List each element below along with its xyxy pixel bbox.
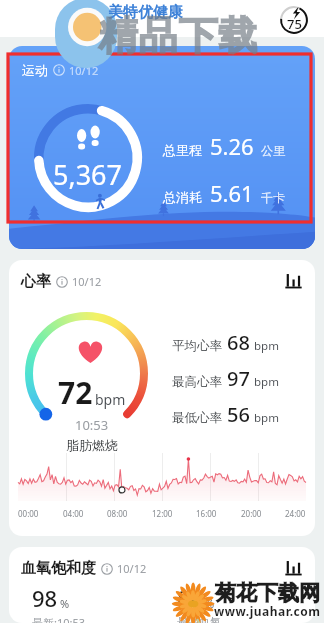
staticText: 千卡 (261, 190, 285, 205)
staticText: bpm (254, 338, 279, 354)
staticText: 美特优健康 (108, 3, 183, 22)
staticText: 精品下载 (98, 11, 258, 60)
staticText: 最高血氧 (177, 615, 221, 623)
staticText: 88 (177, 583, 203, 613)
staticText: 20:00 (241, 508, 262, 519)
staticText: 最新:10:53 (32, 615, 86, 623)
staticText: 00:00 (18, 508, 39, 519)
staticText: bpm (95, 390, 126, 409)
staticText: 10:53 (75, 416, 109, 434)
button[interactable]: 血氧饱和度 (9, 547, 315, 623)
staticText: 75 (287, 15, 302, 33)
staticText: 5,367 (53, 156, 123, 193)
staticText: 16:00 (196, 508, 217, 519)
staticText: 08:00 (107, 508, 128, 519)
staticText: www.juahar.com (214, 603, 321, 619)
staticText: 心率 (21, 272, 51, 291)
staticText: 56 (227, 401, 250, 428)
staticText: 总里程 (163, 142, 202, 158)
staticText: 公里 (261, 143, 285, 158)
staticText: 12:00 (152, 508, 173, 519)
button[interactable]: 运动 (9, 46, 315, 249)
staticText: bpm (254, 410, 279, 426)
staticText: 脂肪燃烧 (66, 437, 118, 453)
staticText: 68 (227, 329, 250, 356)
staticText: 10/12 (69, 63, 99, 78)
button[interactable]: Battery 75 percent charging (280, 6, 308, 34)
button[interactable]: History chart (285, 272, 302, 289)
staticText: 总消耗 (163, 189, 202, 205)
staticText: 平均心率 (172, 338, 222, 354)
staticText: 最低心率 (172, 410, 222, 426)
staticText: 98 (32, 583, 58, 613)
staticText: 5.26 (210, 131, 254, 161)
staticText: % (205, 596, 215, 611)
staticText: 运动 (22, 62, 48, 78)
staticText: 5.61 (210, 178, 254, 208)
staticText: 24:00 (285, 508, 306, 519)
staticText: 97 (227, 365, 250, 392)
staticText: 10/12 (117, 561, 147, 576)
staticText: % (60, 596, 70, 611)
staticText: 10/12 (72, 274, 102, 289)
button[interactable]: History chart (285, 559, 302, 576)
button[interactable]: 心率 (9, 260, 315, 536)
staticText: 72 (58, 372, 93, 413)
staticText: 04:00 (63, 508, 84, 519)
staticText: 菊花下载网 (215, 580, 320, 606)
staticText: 血氧饱和度 (21, 559, 96, 578)
staticText: bpm (254, 374, 279, 390)
staticText: 最高心率 (172, 374, 222, 390)
